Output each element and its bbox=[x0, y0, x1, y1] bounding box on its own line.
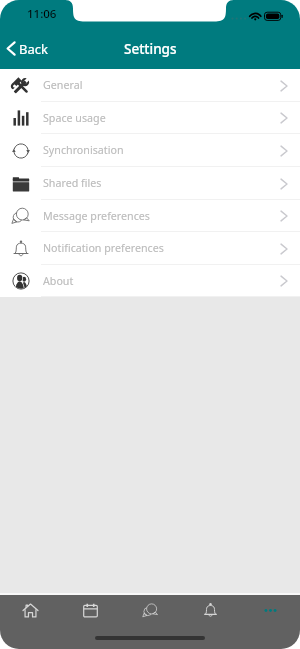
button[interactable]: Synchronisation bbox=[0, 134, 300, 167]
staticText: Space usage bbox=[43, 111, 280, 126]
staticText: Shared files bbox=[43, 176, 280, 191]
button[interactable]: About bbox=[0, 265, 300, 297]
button[interactable]: Notifications bbox=[180, 595, 240, 626]
staticText: Synchronisation bbox=[43, 143, 280, 158]
button[interactable]: More bbox=[240, 595, 300, 626]
button[interactable]: Back bbox=[0, 28, 56, 69]
button[interactable]: Space usage bbox=[0, 102, 300, 134]
staticText: About bbox=[43, 274, 280, 289]
staticText: Message preferences bbox=[43, 209, 280, 224]
button[interactable]: Chats bbox=[120, 595, 180, 626]
staticText: Notification preferences bbox=[43, 241, 280, 256]
button[interactable]: Calendar bbox=[60, 595, 120, 626]
staticText: Back bbox=[19, 40, 48, 58]
staticText: Settings bbox=[124, 40, 177, 58]
button[interactable]: Notification preferences bbox=[0, 232, 300, 265]
staticText: General bbox=[43, 78, 280, 93]
button[interactable]: Message preferences bbox=[0, 200, 300, 232]
button[interactable]: General bbox=[0, 69, 300, 102]
button[interactable]: Shared files bbox=[0, 167, 300, 200]
button[interactable]: Home bbox=[0, 595, 60, 626]
staticText: 11:06 bbox=[27, 6, 57, 22]
